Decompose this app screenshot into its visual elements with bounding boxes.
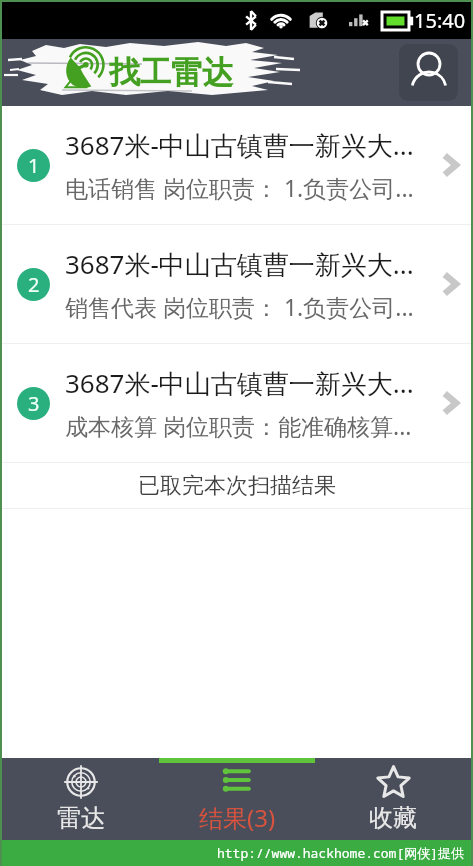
staticText: 电话销售 岗位职责： 1.负责公司... [65,172,414,203]
staticText: 已取完本次扫描结果 [138,472,336,500]
button[interactable]: 结果(3) [159,758,315,840]
button[interactable]: 2 [2,225,471,343]
staticText: 2 [28,271,40,298]
staticText: 销售代表 岗位职责： 1.负责公司... [65,291,414,322]
staticText: http://www.hackhome.com[网侠]提供 [217,844,465,862]
staticText: 3687米-中山古镇曹一新兴大... [65,365,414,401]
button[interactable]: Profile [399,44,458,101]
staticText: 15:40 [414,7,466,34]
staticText: 雷达 [57,803,105,833]
staticText: 找工雷达 [109,53,233,92]
staticText: 收藏 [369,803,417,833]
button[interactable]: 3 [2,344,471,462]
staticText: 结果(3) [199,801,276,834]
staticText: 3687米-中山古镇曹一新兴大... [65,246,414,282]
staticText: 1 [28,152,40,179]
button[interactable]: 收藏 [315,758,471,840]
button[interactable]: 1 [2,106,471,224]
button[interactable]: 雷达 [2,758,159,840]
staticText: 3 [28,390,40,417]
staticText: 3687米-中山古镇曹一新兴大... [65,127,414,163]
staticText: 成本核算 岗位职责：能准确核算... [65,410,412,441]
